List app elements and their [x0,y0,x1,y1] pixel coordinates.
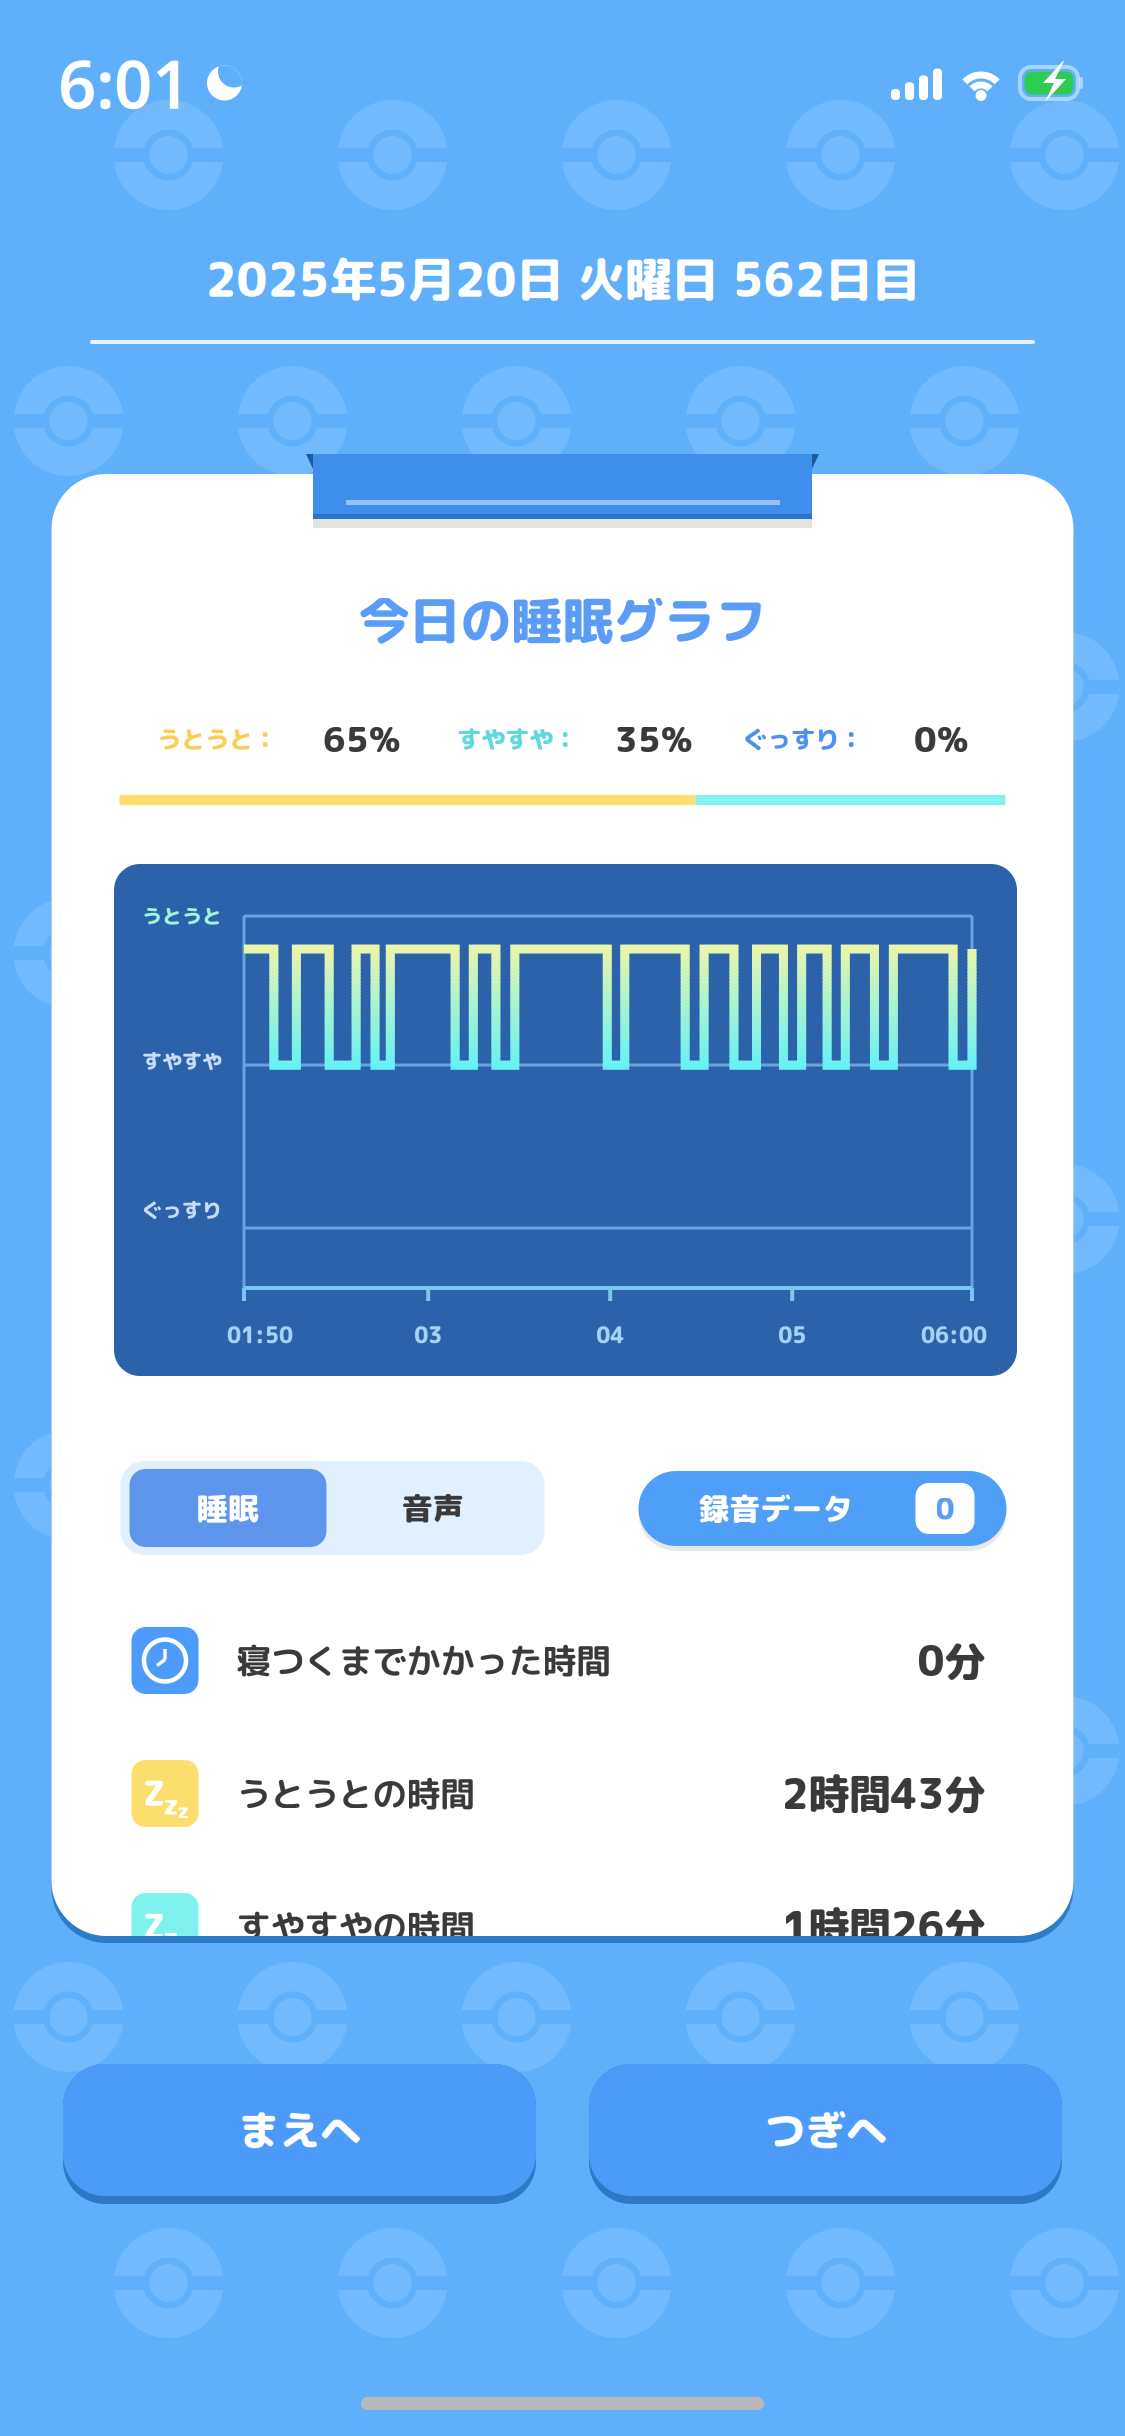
staticText: 2025年5月20日 火曜日 562日目 [205,246,919,312]
staticText: 寝つくまでかかった時間 [236,1637,610,1684]
staticText: うとうと： [157,722,277,756]
staticText: すやすや： [457,722,577,756]
staticText: 音声 [402,1487,464,1529]
staticText: 05 [778,1320,806,1350]
staticText: 録音データ [698,1487,853,1530]
staticText: すやすやの時間 [236,1903,474,1950]
staticText: 01:50 [227,1320,293,1350]
staticText: Z [143,1901,165,1950]
staticText: 04 [596,1320,624,1350]
staticText: まえへ [238,2101,361,2159]
staticText: 睡眠 [197,1487,259,1529]
staticText: 今日の睡眠グラフ [358,585,766,655]
staticText: うとうと [142,902,222,930]
staticText: うとうとの時間 [236,1770,474,1817]
staticText: ぐっすり [142,1196,222,1224]
staticText: 0 [935,1488,954,1529]
staticText: 0% [914,715,968,763]
staticText: 1時間26分 [781,1898,985,1955]
staticText: Z [143,1768,165,1817]
button[interactable]: 睡眠 [129,1469,326,1547]
button[interactable]: つぎへ [589,2064,1062,2204]
staticText: すやすや [142,1047,222,1075]
staticText: 35% [615,715,692,763]
button[interactable]: まえへ [63,2064,536,2204]
staticText: z [163,1784,179,1824]
staticText: z [177,1928,189,1958]
staticText: 06:00 [921,1320,987,1350]
button[interactable]: 音声 [334,1469,531,1547]
staticText: つぎへ [764,2101,887,2159]
button[interactable]: 録音データ [638,1461,1006,1555]
staticText: 0分 [917,1632,985,1689]
staticText: 2時間43分 [781,1765,985,1822]
staticText: z [177,1795,189,1825]
staticText: 6:01 [58,39,190,127]
staticText: ぐっすり： [743,722,863,756]
staticText: z [163,1917,179,1957]
staticText: 03 [414,1320,442,1350]
staticText: 65% [323,715,400,763]
